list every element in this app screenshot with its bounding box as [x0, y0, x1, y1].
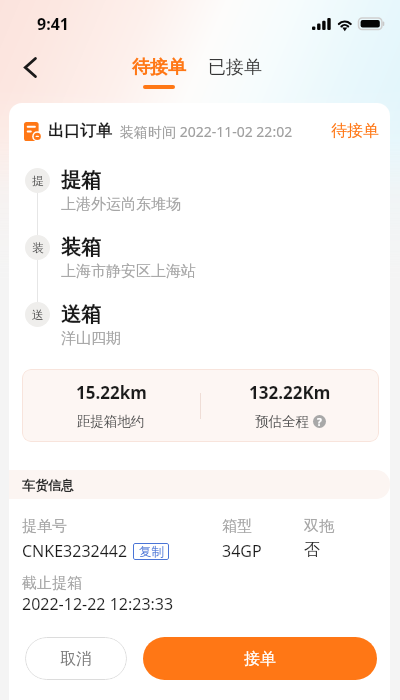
staticText: 洋山四期: [61, 329, 121, 348]
staticText: 提箱: [61, 168, 101, 193]
button[interactable]: 取消: [25, 637, 127, 680]
staticText: 预估全程: [255, 413, 309, 430]
staticText: 否: [304, 540, 320, 560]
staticText: 提单号: [22, 517, 67, 536]
button[interactable]: 复制: [133, 543, 169, 560]
button[interactable]: 待接单: [132, 56, 186, 89]
staticText: 34GP: [222, 540, 262, 562]
staticText: 上港外运尚东堆场: [61, 195, 181, 214]
staticText: 复制: [139, 544, 164, 560]
staticText: 取消: [60, 649, 92, 669]
button[interactable]: 已接单: [208, 56, 262, 85]
staticText: 送箱: [61, 302, 101, 327]
staticText: 送: [32, 307, 44, 322]
staticText: 装箱: [61, 235, 101, 260]
staticText: 132.22Km: [249, 381, 331, 404]
staticText: 提: [32, 173, 44, 188]
staticText: 双拖: [304, 517, 334, 536]
staticText: ?: [317, 415, 322, 428]
staticText: 接单: [244, 649, 276, 669]
staticText: 9:41: [37, 13, 69, 35]
staticText: CNKE3232442: [22, 540, 128, 562]
staticText: 箱型: [222, 517, 252, 536]
staticText: 15.22km: [76, 381, 147, 404]
staticText: 待接单: [331, 121, 379, 141]
staticText: 装箱时间 2022-11-02 22:02: [120, 122, 293, 141]
staticText: 2022-12-22 12:23:33: [22, 593, 174, 615]
staticText: 出口订单: [48, 121, 112, 141]
staticText: 车货信息: [22, 477, 74, 493]
button[interactable]: Back: [12, 49, 48, 85]
staticText: 待接单: [132, 56, 186, 79]
button[interactable]: 接单: [143, 637, 377, 680]
staticText: 装: [32, 240, 44, 255]
staticText: 上海市静安区上海站: [61, 262, 196, 281]
staticText: 距提箱地约: [77, 413, 145, 430]
staticText: 截止提箱: [22, 574, 82, 593]
staticText: 已接单: [208, 56, 262, 79]
